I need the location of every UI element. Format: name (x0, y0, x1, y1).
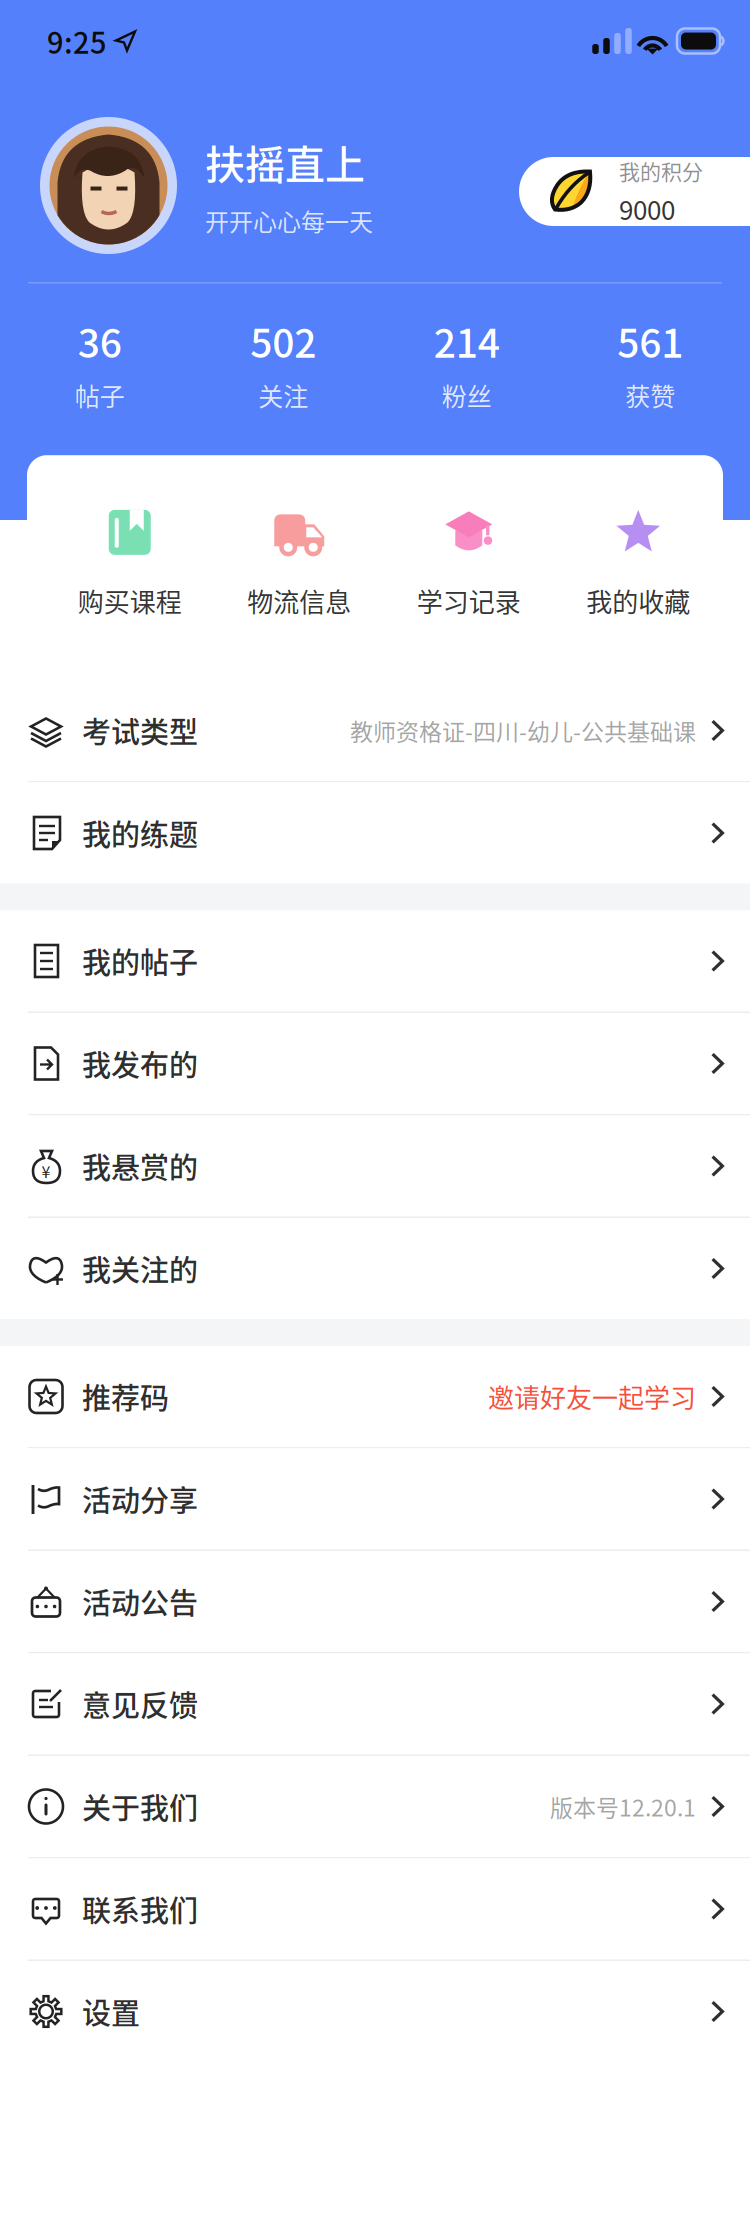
button[interactable]: 我的练题 (0, 782, 750, 883)
button[interactable]: 推荐码 (0, 1346, 750, 1448)
button[interactable]: 活动分享 (0, 1448, 750, 1551)
button[interactable]: 我关注的 (0, 1218, 750, 1319)
staticText: 36 (78, 312, 122, 369)
staticText: 活动公告 (82, 1580, 198, 1622)
button[interactable]: 我发布的 (0, 1013, 750, 1115)
staticText: 我发布的 (82, 1042, 198, 1084)
staticText: 购买课程 (78, 582, 182, 619)
staticText: 邀请好友一起学习 (488, 1378, 696, 1415)
button[interactable]: 我的积分 (519, 157, 750, 226)
staticText: 我的积分 (619, 155, 703, 186)
staticText: 我的帖子 (82, 940, 198, 982)
staticText: 我的收藏 (586, 582, 690, 619)
staticText: 我关注的 (82, 1247, 198, 1289)
button[interactable]: 购买课程 (45, 492, 214, 619)
staticText: 物流信息 (247, 582, 351, 619)
staticText: 意见反馈 (82, 1683, 198, 1725)
staticText: ¥ (41, 1159, 50, 1183)
staticText: 获赞 (625, 377, 675, 413)
staticText: 活动分享 (82, 1478, 198, 1520)
staticText: 9:25 (47, 20, 107, 62)
staticText: 粉丝 (442, 377, 492, 413)
staticText: 关注 (258, 377, 308, 413)
button[interactable]: 学习记录 (384, 492, 553, 619)
button[interactable]: 561 (558, 312, 742, 413)
button[interactable]: 502 (191, 312, 375, 413)
button[interactable]: 考试类型 (0, 680, 750, 782)
staticText: 我悬赏的 (82, 1145, 198, 1187)
staticText: 关于我们 (82, 1785, 198, 1827)
staticText: 帖子 (75, 377, 125, 413)
staticText: 教师资格证-四川-幼儿-公共基础课 (350, 714, 696, 747)
staticText: 我的练题 (82, 812, 198, 854)
button[interactable]: 我的帖子 (0, 910, 750, 1013)
staticText: 9000 (619, 190, 675, 227)
button[interactable]: 214 (375, 312, 558, 413)
staticText: 版本号12.20.1 (550, 1790, 696, 1823)
staticText: 考试类型 (82, 709, 198, 751)
button[interactable]: ¥ (0, 1115, 750, 1218)
staticText: 214 (434, 312, 500, 369)
staticText: 502 (250, 312, 316, 369)
staticText: 学习记录 (417, 582, 521, 619)
button[interactable]: 活动公告 (0, 1551, 750, 1653)
button[interactable]: 36 (8, 312, 191, 413)
button[interactable]: 设置 (0, 1961, 750, 2062)
staticText: 561 (617, 312, 683, 369)
button[interactable]: 关于我们 (0, 1756, 750, 1858)
button[interactable]: 联系我们 (0, 1858, 750, 1961)
staticText: 推荐码 (82, 1375, 169, 1417)
staticText: 联系我们 (82, 1888, 198, 1930)
button[interactable]: 意见反馈 (0, 1653, 750, 1756)
button[interactable]: 我的收藏 (553, 492, 723, 619)
staticText: 开开心心每一天 (205, 203, 373, 238)
staticText: 设置 (82, 1990, 140, 2032)
button[interactable]: 物流信息 (214, 492, 384, 619)
staticText: 扶摇直上 (205, 133, 365, 191)
